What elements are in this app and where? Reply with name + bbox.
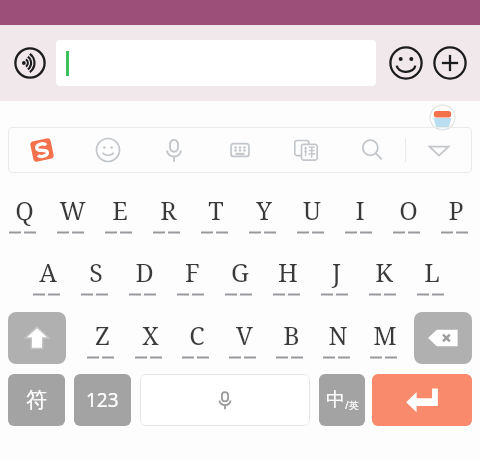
button[interactable]: C [173,311,220,365]
button[interactable]: J [312,248,360,302]
button[interactable]: Sogou input [8,127,75,173]
button[interactable]: O [384,186,432,240]
staticText: Y [256,193,272,227]
button[interactable]: L [408,248,456,302]
staticText: V [236,318,253,352]
staticText: U [303,193,321,227]
staticText: Q [15,193,34,227]
staticText: B [283,318,300,352]
button[interactable]: Q [0,186,48,240]
staticText: P [448,193,464,227]
button[interactable]: 中 [319,374,365,426]
button[interactable]: M [361,311,408,365]
button[interactable]: W [48,186,96,240]
button[interactable]: Backspace [414,312,472,364]
staticText: 123 [86,387,119,413]
staticText: I [355,193,365,227]
button[interactable]: Voice input [141,127,207,173]
button[interactable]: 123 [74,374,131,426]
button[interactable]: D [120,248,168,302]
button[interactable]: Keyboard layout [207,127,273,173]
button[interactable]: T [192,186,240,240]
button[interactable]: Enter [372,374,472,426]
button[interactable]: Shift [8,312,66,364]
button[interactable]: F [168,248,216,302]
button[interactable]: E [96,186,144,240]
staticText: L [424,255,440,289]
button[interactable]: V [220,311,267,365]
staticText: 中 [326,388,345,412]
button[interactable]: Search [339,127,405,173]
button[interactable]: Z [78,311,126,365]
staticText: Z [95,318,110,352]
staticText: K [375,255,393,289]
staticText: R [160,193,177,227]
button[interactable]: I [336,186,384,240]
button[interactable]: More options [428,41,472,85]
button[interactable]: Y [240,186,288,240]
staticText: N [328,318,348,352]
button[interactable]: A [24,248,72,302]
button[interactable]: 符 [8,374,65,426]
button[interactable]: S [72,248,120,302]
button[interactable]: K [360,248,408,302]
button[interactable]: Emoticons [75,127,141,173]
button[interactable]: H [264,248,312,302]
staticText: /英 [345,398,359,412]
staticText: G [231,255,249,289]
staticText: X [142,318,159,352]
staticText: M [373,318,397,352]
staticText: E [112,193,128,227]
staticText: H [278,255,298,289]
button[interactable]: Voice input [8,41,52,85]
staticText: C [189,318,205,352]
button[interactable]: Profile avatar [427,102,457,132]
staticText: T [208,193,224,227]
button[interactable]: U [288,186,336,240]
staticText: D [135,255,154,289]
staticText: S [89,255,103,289]
button[interactable]: R [144,186,192,240]
button[interactable]: P [432,186,480,240]
button[interactable]: Space, voice input [140,374,310,426]
button[interactable]: Translate [273,127,339,173]
button[interactable]: Emoji [384,41,428,85]
staticText: 符 [26,387,47,413]
staticText: W [59,193,86,227]
button[interactable]: X [126,311,173,365]
staticText: O [399,193,418,227]
button[interactable]: B [267,311,314,365]
staticText: F [185,255,200,289]
button[interactable]: Hide keyboard [406,127,472,173]
staticText: A [39,255,57,289]
button[interactable] [56,40,376,86]
staticText: J [332,255,341,289]
button[interactable]: G [216,248,264,302]
button[interactable]: N [314,311,361,365]
